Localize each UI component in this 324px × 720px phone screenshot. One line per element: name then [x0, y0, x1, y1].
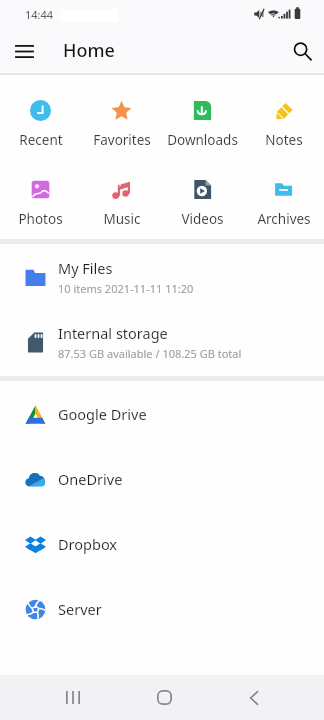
button[interactable]: Open navigation menu	[5, 32, 43, 70]
staticText: Server	[58, 599, 102, 619]
button[interactable]: Back	[231, 675, 276, 720]
button[interactable]: Recent apps	[50, 675, 95, 720]
staticText: 10 items 2021-11-11 11:20	[58, 281, 194, 296]
button[interactable]: Internal storage	[0, 309, 324, 374]
staticText: Recent	[19, 131, 63, 149]
staticText: Archives	[257, 210, 311, 228]
staticText: 87.53 GB available / 108.25 GB total	[58, 346, 242, 361]
staticText: Photos	[18, 210, 63, 228]
staticText: Google Drive	[58, 404, 147, 424]
button[interactable]: Videos	[162, 179, 243, 228]
staticText: Notes	[265, 131, 303, 149]
staticText: My Files	[58, 258, 113, 278]
staticText: Music	[103, 210, 141, 228]
staticText: Dropbox	[58, 534, 118, 554]
button[interactable]: Photos	[0, 179, 81, 228]
staticText: Home	[63, 38, 115, 63]
button[interactable]: Server	[0, 576, 324, 641]
staticText: Downloads	[167, 131, 238, 149]
button[interactable]: Archives	[243, 179, 324, 228]
staticText: 14:44	[25, 7, 54, 22]
button[interactable]: OneDrive	[0, 446, 324, 511]
button[interactable]: Home	[142, 675, 187, 720]
button[interactable]: Google Drive	[0, 381, 324, 446]
button[interactable]: Notes	[243, 100, 324, 149]
button[interactable]: My Files	[0, 244, 324, 309]
staticText: Videos	[181, 210, 224, 228]
button[interactable]: Music	[81, 179, 162, 228]
staticText: Favorites	[93, 131, 151, 149]
button[interactable]: Recent	[0, 100, 81, 149]
button[interactable]: Downloads	[162, 100, 243, 149]
staticText: OneDrive	[58, 469, 123, 489]
button[interactable]: Favorites	[81, 100, 162, 149]
staticText: Internal storage	[58, 323, 168, 343]
button[interactable]: Dropbox	[0, 511, 324, 576]
button[interactable]: Search	[283, 32, 321, 70]
